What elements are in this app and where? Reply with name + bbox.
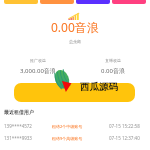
staticText: 07-15 12:37:40 [109,135,140,141]
button[interactable]: 139****4572 [0,123,150,129]
staticText: 西瓜源码 [80,81,118,93]
button[interactable]: 131****9933 [0,135,150,141]
staticText: 最近租借用户 [4,109,34,115]
staticText: 0.00音浪 [51,19,99,35]
staticText: 总余额 [69,39,81,44]
staticText: 07-15 15:22:58 [109,123,140,129]
staticText: 直播收益 [105,58,121,63]
staticText: 推广收益 [30,58,46,63]
other: Trend [68,13,79,20]
staticText: 租借9个高级账号 [52,136,83,141]
staticText: 0.00音浪 [101,67,125,75]
staticText: 139****4572 [4,123,32,129]
staticText: 租借2个中级账号 [52,124,83,129]
staticText: 131****9933 [4,135,32,141]
staticText: 3,000.00音浪 [20,67,56,75]
